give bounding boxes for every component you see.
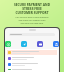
button[interactable]: WhatsApp support — [5, 41, 11, 47]
button[interactable] — [8, 69, 56, 70]
button[interactable]: Telegram support — [21, 41, 27, 47]
staticText: CUSTOMER SUPPORT — [0, 11, 64, 15]
staticText: and reach our support team — [0, 19, 64, 22]
button[interactable] — [9, 33, 55, 36]
button[interactable] — [8, 51, 56, 54]
staticText: any time you need help. — [0, 22, 64, 25]
staticText: Pay securely with trusted methods — [0, 16, 64, 19]
button[interactable]: Card payment — [37, 41, 43, 47]
staticText: STRESS FREE — [0, 7, 64, 11]
staticText: SECURE PAYMENT AND — [0, 3, 64, 7]
button[interactable] — [8, 57, 56, 60]
button[interactable]: Bank transfer — [53, 41, 59, 47]
button[interactable] — [8, 63, 56, 66]
